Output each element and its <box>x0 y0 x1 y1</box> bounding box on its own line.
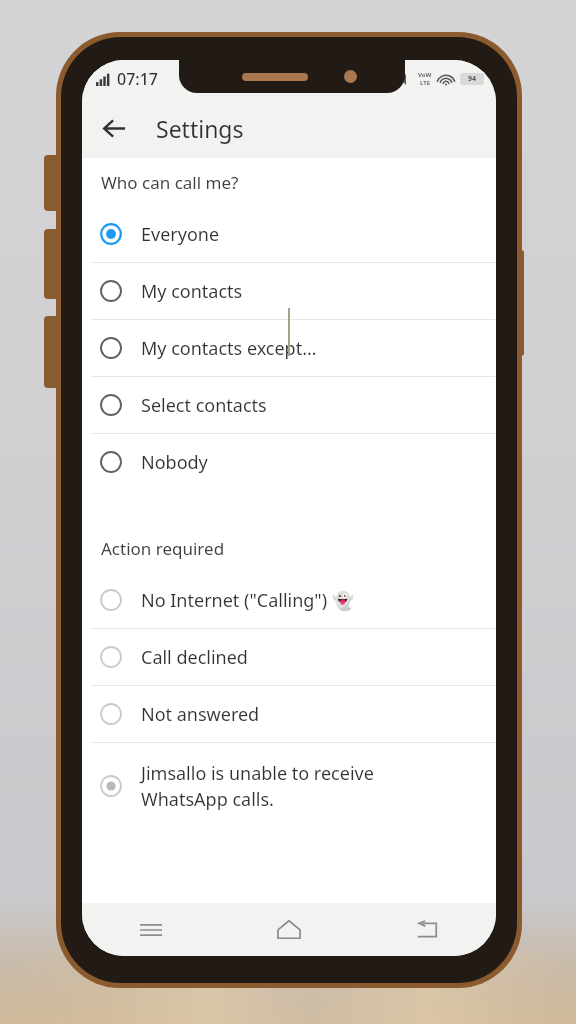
staticText: 07:17 <box>117 68 158 90</box>
staticText: My contacts <box>141 279 243 304</box>
button[interactable]: Recents <box>82 903 220 956</box>
button[interactable]: Select contacts <box>82 377 496 433</box>
staticText: Action required <box>101 537 225 560</box>
staticText: Nobody <box>141 450 208 475</box>
staticText: VoW <box>418 71 432 79</box>
staticText: Call declined <box>141 645 248 670</box>
staticText: Not answered <box>141 702 260 727</box>
button[interactable]: My contacts <box>82 263 496 319</box>
staticText: No Internet ("Calling") 👻 <box>141 588 355 613</box>
button[interactable]: Everyone <box>82 206 496 262</box>
staticText: Select contacts <box>141 393 267 418</box>
button[interactable]: Call declined <box>82 629 496 685</box>
button[interactable]: Jimsallo is unable to receive WhatsApp c… <box>82 743 496 829</box>
staticText: LTE <box>420 79 431 87</box>
staticText: My contacts except… <box>141 336 317 361</box>
button[interactable]: Home <box>220 903 358 956</box>
staticText: Who can call me? <box>101 171 239 194</box>
button[interactable]: Not answered <box>82 686 496 742</box>
staticText: Settings <box>156 113 244 144</box>
staticText: Everyone <box>141 222 220 247</box>
button[interactable]: Back <box>358 903 496 956</box>
button[interactable]: Back <box>90 104 138 152</box>
button[interactable]: My contacts except… <box>82 320 496 376</box>
button[interactable]: Nobody <box>82 434 496 490</box>
button[interactable]: No Internet ("Calling") 👻 <box>82 572 496 628</box>
staticText: Jimsallo is unable to receive WhatsApp c… <box>141 761 374 811</box>
staticText: 94 <box>468 74 477 84</box>
